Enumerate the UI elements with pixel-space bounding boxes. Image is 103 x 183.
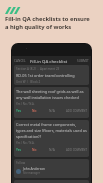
button[interactable]: No: [32, 108, 49, 113]
button[interactable]: Section A (8.2) - Apartment 23: [14, 65, 89, 85]
button[interactable]: Correct metal frame components, beam: [14, 120, 89, 157]
staticText: types and size (floors, materials used a…: [16, 128, 87, 133]
button[interactable]: SUBMIT: [77, 59, 89, 63]
staticText: Site manager: [23, 171, 40, 175]
button[interactable]: N/A: [49, 147, 66, 152]
staticText: Yes: [16, 148, 22, 152]
button[interactable]: Yes: [16, 108, 32, 113]
staticText: N/A: [49, 109, 55, 113]
staticText: No: [32, 148, 37, 152]
staticText: Yes / No / N.A.: [16, 141, 35, 145]
staticText: ADD COMMENT: [66, 109, 87, 113]
staticText: Unit W | Block 2: [16, 80, 41, 83]
staticText: Follow: [16, 161, 26, 165]
staticText: The wall sheeting roof grids as well as: [16, 89, 84, 94]
button[interactable]: Yes: [16, 147, 32, 152]
staticText: ADD COMMENT: [66, 148, 87, 152]
staticText: any wall installation issues checked: [16, 95, 79, 100]
staticText: specification)?: [16, 134, 42, 139]
staticText: CANCEL: [14, 59, 26, 63]
button[interactable]: CANCEL: [14, 59, 26, 63]
staticText: SUBMIT: [77, 59, 89, 63]
button[interactable]: N/A: [49, 108, 66, 113]
button[interactable]: Follow: [14, 159, 89, 178]
staticText: RD-05 1st order team/controlling process: [16, 73, 87, 78]
staticText: Fill-in QA checklist: [30, 58, 68, 64]
button[interactable]: ADD COMMENT: [66, 109, 87, 113]
button[interactable]: No: [32, 147, 49, 152]
staticText: N/A: [49, 148, 55, 152]
staticText: Section A (8.2) - Apartment 23: [16, 67, 60, 71]
staticText: No: [32, 109, 37, 113]
staticText: Yes / No / N.A.: [16, 102, 35, 106]
staticText: Fill-in QA checklists to ensure a high q…: [5, 15, 90, 31]
staticText: John Anderson: [23, 167, 46, 171]
staticText: Yes: [16, 109, 22, 113]
staticText: Correct metal frame components, beam: [16, 122, 87, 127]
button[interactable]: ADD COMMENT: [66, 148, 87, 152]
button[interactable]: The wall sheeting roof grids as well as: [14, 87, 89, 118]
